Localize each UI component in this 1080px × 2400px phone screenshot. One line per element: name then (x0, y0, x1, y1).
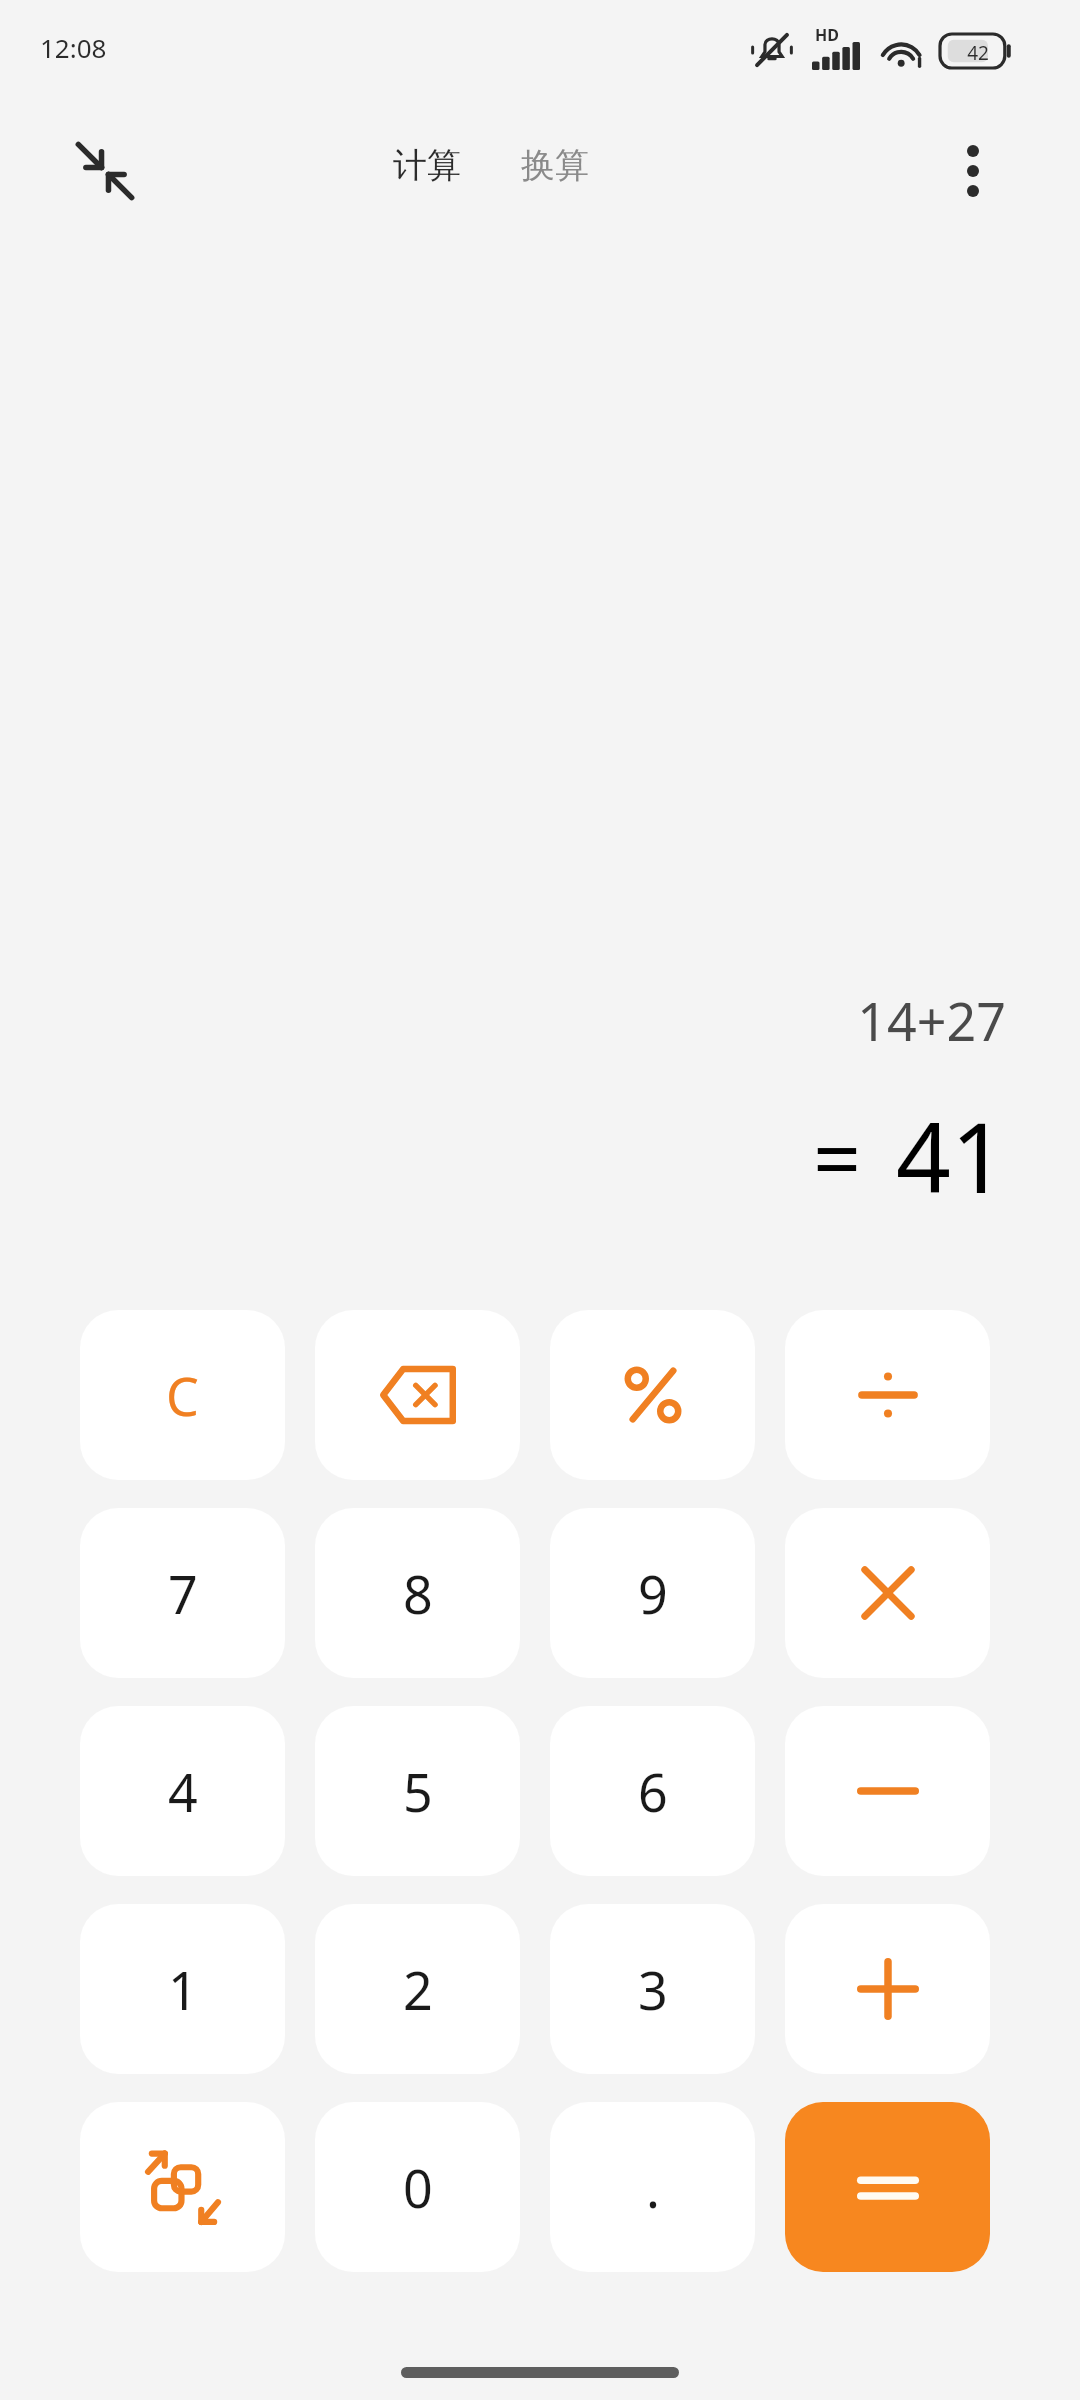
button[interactable]: 9 (550, 1508, 755, 1678)
staticText: HD (815, 24, 839, 46)
staticText: 41 (896, 1090, 1006, 1221)
staticText: 12:08 (40, 30, 107, 65)
button[interactable]: Plus (785, 1904, 990, 2074)
staticText: 7 (168, 1558, 198, 1629)
button[interactable]: 2 (315, 1904, 520, 2074)
staticText: C (166, 1360, 199, 1431)
button[interactable]: 6 (550, 1706, 755, 1876)
button[interactable]: 换算 (513, 138, 597, 193)
button[interactable]: 1 (80, 1904, 285, 2074)
button[interactable]: 3 (550, 1904, 755, 2074)
button[interactable]: Equals (785, 2102, 990, 2272)
staticText: 0 (403, 2152, 433, 2223)
staticText: 9 (638, 1558, 668, 1629)
staticText: 14+27 (0, 985, 1006, 1056)
button[interactable]: Minus (785, 1706, 990, 1876)
staticText: 2 (403, 1954, 433, 2025)
staticText: 6 (638, 1756, 668, 1827)
button[interactable]: Scientific mode (80, 2102, 285, 2272)
button[interactable]: 0 (315, 2102, 520, 2272)
button[interactable]: 4 (80, 1706, 285, 1876)
staticText: 3 (638, 1954, 668, 2025)
staticText: 5 (403, 1756, 433, 1827)
staticText: . (646, 2152, 660, 2223)
staticText: 42 (955, 40, 1001, 66)
button[interactable]: 计算 (385, 138, 469, 193)
button[interactable]: Multiply (785, 1508, 990, 1678)
button[interactable]: C (80, 1310, 285, 1480)
staticText: 换算 (521, 144, 589, 187)
button[interactable]: Divide (785, 1310, 990, 1480)
button[interactable]: 7 (80, 1508, 285, 1678)
staticText: 4 (168, 1756, 198, 1827)
button[interactable]: 8 (315, 1508, 520, 1678)
button[interactable]: Collapse (62, 128, 148, 214)
button[interactable]: . (550, 2102, 755, 2272)
staticText: 8 (403, 1558, 433, 1629)
button[interactable]: More options (930, 128, 1016, 214)
staticText: = (813, 1099, 862, 1213)
staticText: 计算 (393, 144, 461, 187)
button[interactable]: Percent (550, 1310, 755, 1480)
staticText: 1 (168, 1954, 198, 2025)
button[interactable]: 5 (315, 1706, 520, 1876)
button[interactable]: Backspace (315, 1310, 520, 1480)
